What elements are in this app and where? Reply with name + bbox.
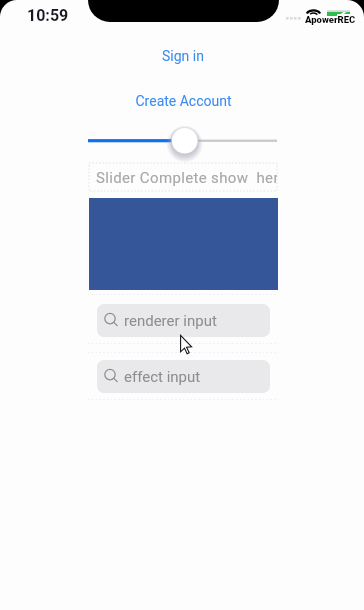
button[interactable]: effect input: [97, 360, 270, 393]
button[interactable]: Sign in: [0, 47, 364, 65]
staticText: 10:59: [27, 6, 69, 25]
staticText: ApowerREC: [304, 15, 355, 26]
button[interactable]: Create Account: [0, 92, 364, 110]
button[interactable]: renderer input: [97, 304, 270, 337]
staticText: renderer input: [124, 312, 217, 330]
staticText: ApowerREC: [305, 15, 356, 26]
staticText: ApowerREC: [305, 14, 356, 25]
staticText: Slider Complete show here: [96, 169, 277, 187]
staticText: Sign in: [162, 48, 204, 64]
staticText: ApowerREC: [304, 12, 355, 23]
button[interactable]: Slider Complete show here: [89, 163, 277, 191]
staticText: effect input: [124, 368, 201, 386]
staticText: ApowerREC: [304, 14, 355, 25]
staticText: Create Account: [135, 93, 232, 109]
staticText: ApowerREC: [305, 12, 356, 23]
button[interactable]: Volume slider: [70, 122, 295, 160]
staticText: ApowerREC: [306, 12, 357, 23]
staticText: ApowerREC: [306, 14, 357, 25]
staticText: ApowerREC: [306, 15, 357, 26]
